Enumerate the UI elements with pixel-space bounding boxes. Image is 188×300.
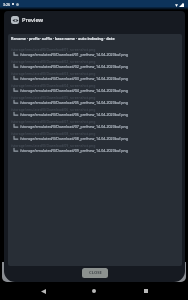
staticText: /storage/emulated/0/Download/06_screensh… <box>11 107 96 112</box>
staticText: /storage/emulated/0/Download/02_screensh… <box>11 59 96 64</box>
staticText: /storage/emulated/0/Download/08_prefnew_… <box>20 136 128 141</box>
staticText: /storage/emulated/0/Download/06_prefnew_… <box>20 112 128 117</box>
staticText: /storage/emulated/0/Download/05_screensh… <box>11 95 96 100</box>
button[interactable]: CLOSE <box>82 268 108 278</box>
staticText: CLOSE <box>89 270 102 276</box>
staticText: /storage/emulated/0/Download/09_screensh… <box>11 143 96 148</box>
button[interactable]: Back <box>34 282 52 300</box>
staticText: /storage/emulated/0/Download/03_prefnew_… <box>20 76 128 81</box>
staticText: Preview <box>22 16 44 24</box>
staticText: Rename · prefix· suffix · base name · au… <box>11 36 115 41</box>
staticText: /storage/emulated/0/Download/04_prefnew_… <box>20 88 128 93</box>
staticText: /storage/emulated/0/Download/07_screensh… <box>11 119 96 124</box>
staticText: /storage/emulated/0/Download/09_prefnew_… <box>20 148 128 153</box>
staticText: /storage/emulated/0/Download/04_screensh… <box>11 83 96 88</box>
staticText: /storage/emulated/0/Download/05_prefnew_… <box>20 100 128 105</box>
staticText: /storage/emulated/0/Download/01_screensh… <box>11 47 96 52</box>
button[interactable]: Recent apps <box>137 282 155 300</box>
staticText: /storage/emulated/0/Download/03_screensh… <box>11 71 96 76</box>
staticText: 3:26 <box>3 2 11 7</box>
staticText: /storage/emulated/0/Download/02_prefnew_… <box>20 64 128 69</box>
staticText: /storage/emulated/0/Download/01_prefnew_… <box>20 52 128 57</box>
staticText: /storage/emulated/0/Download/08_screensh… <box>11 131 96 136</box>
staticText: /storage/emulated/0/Download/07_prefnew_… <box>20 124 128 129</box>
button[interactable]: Home <box>85 282 103 300</box>
